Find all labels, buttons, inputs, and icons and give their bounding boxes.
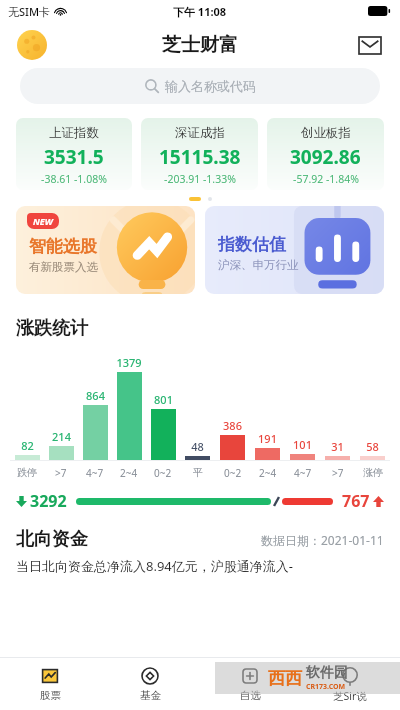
staticText: 386 [223,418,242,433]
staticText: 上证指数 [49,125,99,141]
staticText: 西西 [268,668,302,689]
staticText: 0~2 [224,466,242,480]
staticText: 涨停 [363,466,383,479]
staticText: 3292 [30,490,67,512]
staticText: 58 [366,439,379,454]
staticText: 软件园 [306,664,348,682]
button[interactable]: 自选 [200,658,300,710]
button[interactable]: 智能选股 [16,206,195,294]
button[interactable]: 上证指数 [16,118,132,190]
staticText: 2~4 [120,466,138,480]
staticText: 基金 [140,689,161,702]
staticText: 214 [52,429,71,444]
staticText: 股票 [40,689,61,702]
staticText: -203.91 -1.33% [164,172,236,186]
button[interactable]: 基金 [100,658,200,710]
staticText: 跌停 [17,466,37,479]
staticText: 801 [154,392,173,407]
staticText: 1379 [116,355,142,370]
button[interactable]: Messages [356,31,384,59]
staticText: 4~7 [86,466,104,480]
staticText: 指数估值 [218,234,286,255]
button[interactable]: 股票 [0,658,100,710]
button[interactable]: 指数估值 [205,206,384,294]
staticText: 101 [293,437,312,452]
button[interactable]: 芝Sir说 [300,658,400,710]
staticText: 2~4 [259,466,277,480]
staticText: 0~2 [154,466,172,480]
staticText: 当日北向资金总净流入8.94亿元，沪股通净流入- [16,557,293,575]
staticText: 864 [86,388,105,403]
button[interactable]: 创业板指 [267,118,384,190]
staticText: 无SIM卡 [8,4,51,19]
staticText: 输入名称或代码 [165,78,256,94]
staticText: 数据日期：2021-01-11 [261,532,384,548]
staticText: 767 [342,490,370,512]
staticText: 191 [258,431,277,446]
button[interactable]: 深证成指 [141,118,258,190]
staticText: 智能选股 [29,236,97,257]
staticText: 有新股票入选 [29,260,98,274]
staticText: 平 [193,466,203,479]
staticText: -57.92 -1.84% [293,172,359,186]
staticText: 自选 [240,689,261,702]
button[interactable]: 输入名称或代码 [20,68,380,104]
staticText: 3531.5 [44,144,104,170]
staticText: 4~7 [294,466,312,480]
button[interactable]: Profile [17,30,47,60]
staticText: CR173.COM [306,682,346,692]
staticText: 3092.86 [290,144,361,170]
staticText: NEW [33,215,53,227]
staticText: 下午 11:08 [173,4,227,19]
staticText: 芝士财富 [162,33,238,57]
staticText: 15115.38 [159,144,241,170]
staticText: 涨跌统计 [16,317,88,340]
staticText: 沪深、申万行业 [218,258,299,272]
staticText: >7 [332,466,344,480]
staticText: 48 [191,439,204,454]
staticText: 创业板指 [301,125,351,141]
staticText: 北向资金 [16,528,88,551]
staticText: 芝Sir说 [333,689,367,703]
staticText: -38.61 -1.08% [41,172,107,186]
staticText: 31 [331,439,344,454]
staticText: 82 [21,438,34,453]
staticText: 深证成指 [175,125,225,141]
staticText: >7 [55,466,67,480]
